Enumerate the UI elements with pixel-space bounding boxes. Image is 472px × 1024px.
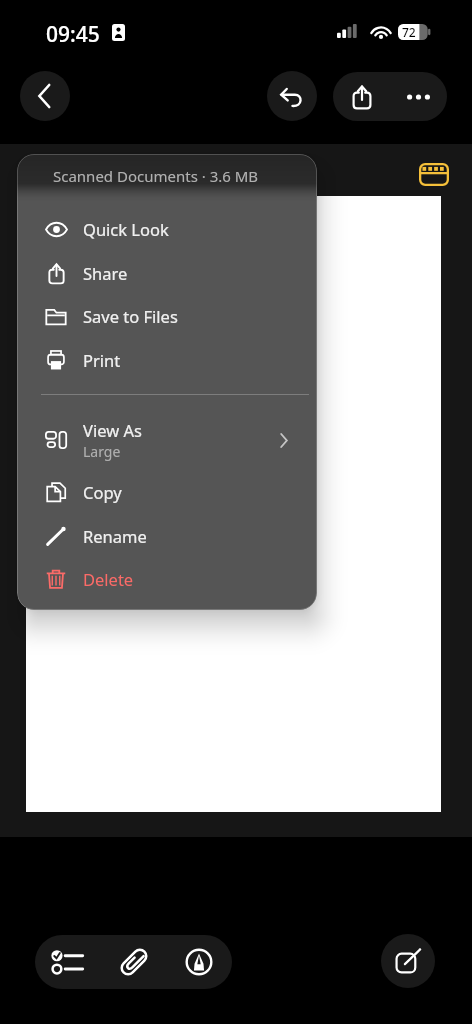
staticText: Quick Look	[83, 218, 169, 240]
button[interactable]: View As	[17, 416, 317, 464]
staticText: Copy	[83, 481, 122, 503]
button[interactable]: Share	[17, 251, 317, 295]
button[interactable]: Copy	[17, 470, 317, 514]
staticText: Delete	[83, 568, 134, 590]
button[interactable]: Undo	[267, 71, 317, 121]
staticText: Rename	[83, 525, 147, 547]
button[interactable]: Checklist	[35, 935, 101, 989]
staticText: Save to Files	[83, 305, 178, 327]
staticText: Scanned Documents · 3.6 MB	[53, 166, 259, 186]
staticText: 72	[402, 24, 416, 40]
button[interactable]: Scan options	[412, 152, 456, 196]
button[interactable]: Rename	[17, 514, 317, 558]
staticText: Large	[83, 442, 121, 461]
staticText: 09:45	[46, 20, 100, 49]
button[interactable]: Compose	[381, 934, 435, 988]
button[interactable]: Markup	[166, 935, 232, 989]
button[interactable]: Attach	[101, 935, 166, 989]
button[interactable]: Quick Look	[17, 207, 317, 251]
button[interactable]: Back	[20, 71, 70, 121]
button[interactable]: Delete	[17, 557, 317, 601]
button[interactable]: Save to Files	[17, 294, 317, 338]
staticText: Print	[83, 349, 121, 371]
button[interactable]: More options	[390, 72, 447, 121]
button[interactable]: Share	[333, 72, 390, 121]
button[interactable]: Print	[17, 338, 317, 382]
staticText: Share	[83, 262, 128, 284]
staticText: View As	[83, 419, 142, 441]
